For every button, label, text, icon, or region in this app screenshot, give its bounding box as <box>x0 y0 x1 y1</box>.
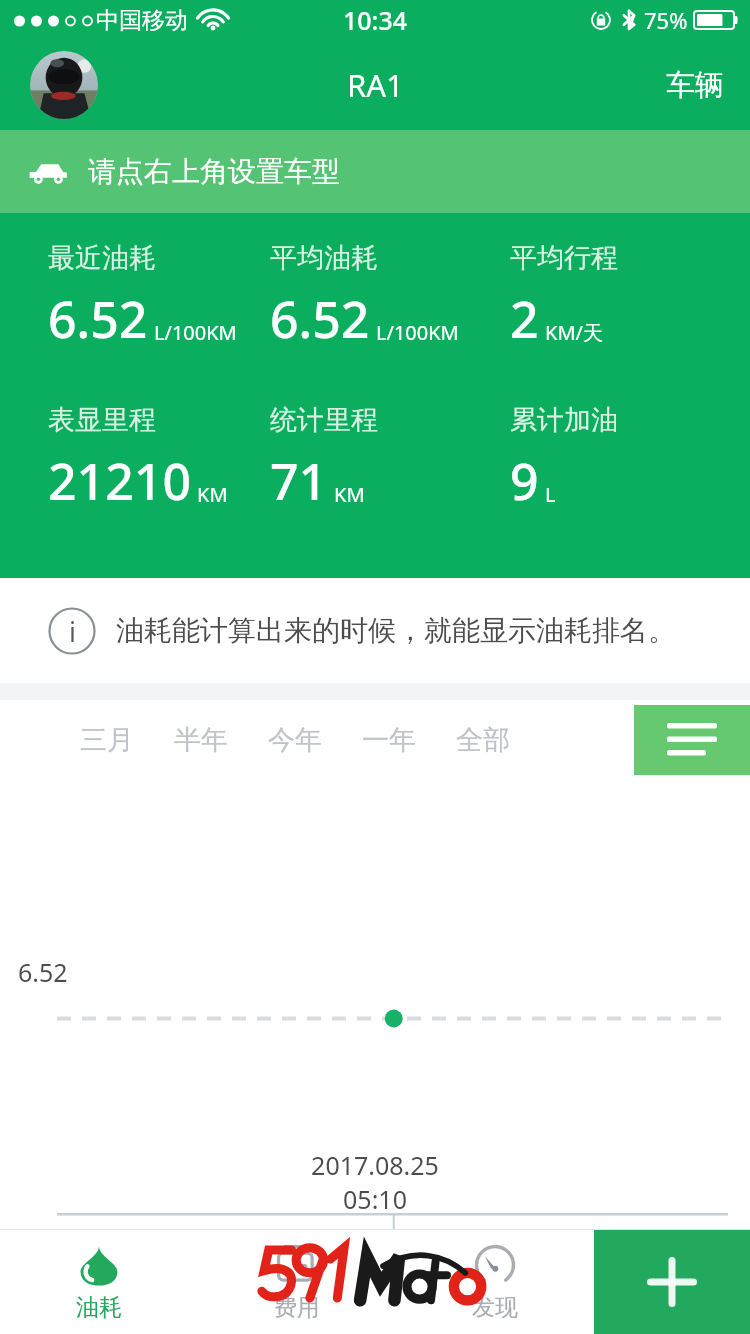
staticText: 车辆 <box>666 67 724 104</box>
staticText: 2 <box>510 285 539 353</box>
staticText: KM <box>197 481 228 508</box>
button[interactable]: 一年 <box>342 709 436 771</box>
staticText: 请点右上角设置车型 <box>88 154 340 189</box>
staticText: 6.52 <box>270 285 370 353</box>
staticText: KM <box>334 481 365 508</box>
button[interactable]: 平均油耗 <box>270 241 500 353</box>
staticText: 油耗能计算出来的时候，就能显示油耗排名。 <box>116 613 676 648</box>
staticText: 半年 <box>174 723 228 757</box>
button[interactable]: Profile <box>30 51 98 119</box>
staticText: 最近油耗 <box>48 241 156 275</box>
staticText: 三月 <box>80 723 134 757</box>
button[interactable]: 车辆 <box>658 57 732 114</box>
button[interactable]: 三月 <box>60 709 154 771</box>
staticText: 全部 <box>456 723 510 757</box>
staticText: 统计里程 <box>270 403 378 437</box>
staticText: L/100KM <box>376 319 459 346</box>
staticText: RA1 <box>347 64 404 106</box>
button[interactable]: 全部 <box>436 709 530 771</box>
button[interactable]: i <box>0 578 750 683</box>
staticText: 6.52 <box>48 285 148 353</box>
staticText: KM/天 <box>545 319 603 346</box>
staticText: L <box>545 481 556 508</box>
button[interactable]: 半年 <box>154 709 248 771</box>
button[interactable]: 最近油耗 <box>48 241 250 353</box>
staticText: 6.52 <box>18 955 68 989</box>
button[interactable]: 发现 <box>396 1230 594 1334</box>
button[interactable]: 统计里程 <box>270 403 500 515</box>
staticText: 2017.08.25 <box>311 1148 439 1182</box>
staticText: L/100KM <box>154 319 237 346</box>
staticText: 10:34 <box>343 3 408 37</box>
button[interactable]: 累计加油 <box>510 403 750 515</box>
button[interactable]: 请点右上角设置车型 <box>0 130 750 213</box>
button[interactable]: 表显里程 <box>48 403 250 515</box>
staticText: 75% <box>644 5 688 35</box>
staticText: 今年 <box>268 723 322 757</box>
button[interactable]: 今年 <box>248 709 342 771</box>
button[interactable]: 平均行程 <box>510 241 750 353</box>
staticText: 一年 <box>362 723 416 757</box>
staticText: i <box>69 613 76 650</box>
staticText: 71 <box>270 447 328 515</box>
staticText: 发现 <box>472 1293 518 1322</box>
staticText: 累计加油 <box>510 403 618 437</box>
button[interactable]: 费用 <box>198 1230 396 1334</box>
staticText: 05:10 <box>343 1182 407 1216</box>
button[interactable]: 油耗 <box>0 1230 198 1334</box>
staticText: 21210 <box>48 447 191 515</box>
staticText: 油耗 <box>76 1293 122 1322</box>
button[interactable]: Menu <box>634 705 750 775</box>
staticText: 费用 <box>274 1293 320 1322</box>
staticText: 表显里程 <box>48 403 156 437</box>
staticText: 中国移动 <box>96 6 188 35</box>
staticText: 9 <box>510 447 539 515</box>
button[interactable]: Add <box>594 1230 750 1334</box>
staticText: 平均行程 <box>510 241 618 275</box>
staticText: 平均油耗 <box>270 241 378 275</box>
